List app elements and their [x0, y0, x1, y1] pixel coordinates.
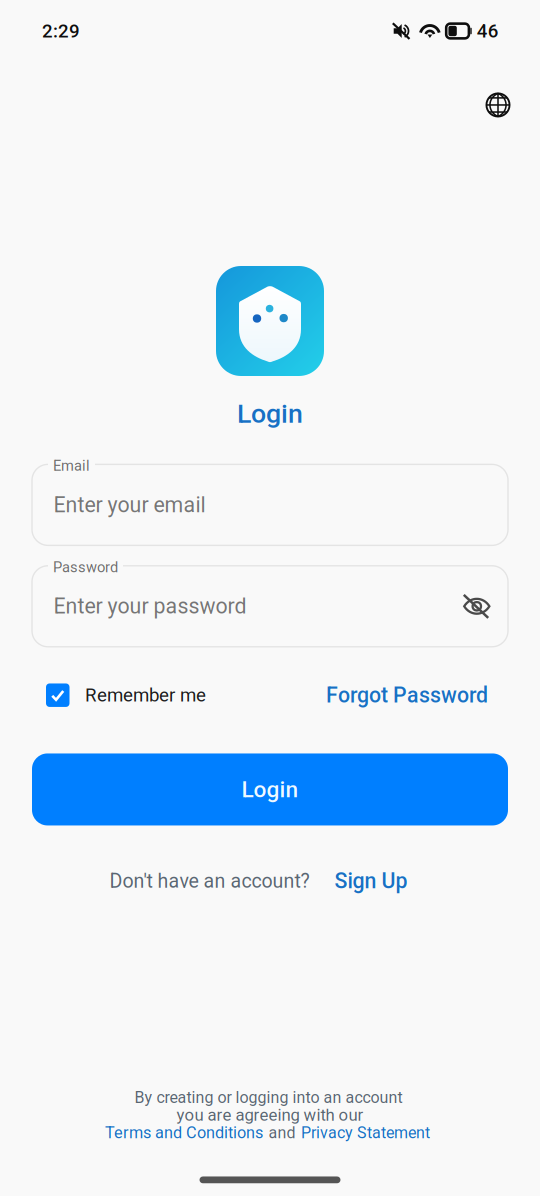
staticText: Terms and Conditions [105, 1123, 263, 1142]
staticText: and [268, 1123, 295, 1142]
staticText: Remember me [85, 684, 206, 706]
staticText: Login [241, 776, 298, 803]
staticText: Email [53, 457, 90, 474]
button[interactable]: Terms and Conditions [105, 1123, 263, 1142]
button[interactable]: Forgot Password [326, 683, 488, 708]
staticText: Enter your password [53, 594, 246, 619]
staticText: Forgot Password [326, 683, 488, 708]
staticText: Don't have an account? [109, 869, 309, 892]
staticText: Enter your email [53, 492, 205, 517]
button[interactable]: Sign Up [334, 868, 407, 893]
button[interactable]: Login [32, 753, 508, 825]
staticText: By creating or logging into an account [134, 1088, 402, 1107]
staticText: 2:29 [42, 20, 80, 42]
button[interactable]: Change language [475, 82, 520, 127]
staticText: Login [237, 398, 303, 429]
button[interactable]: Remember me [46, 683, 206, 707]
staticText: Privacy Statement [301, 1123, 430, 1142]
staticText: Sign Up [334, 868, 407, 893]
staticText: Password [53, 558, 118, 576]
staticText: 46 [477, 20, 499, 42]
staticText: you are agreeing with our [176, 1105, 363, 1125]
button[interactable]: Privacy Statement [301, 1123, 430, 1142]
